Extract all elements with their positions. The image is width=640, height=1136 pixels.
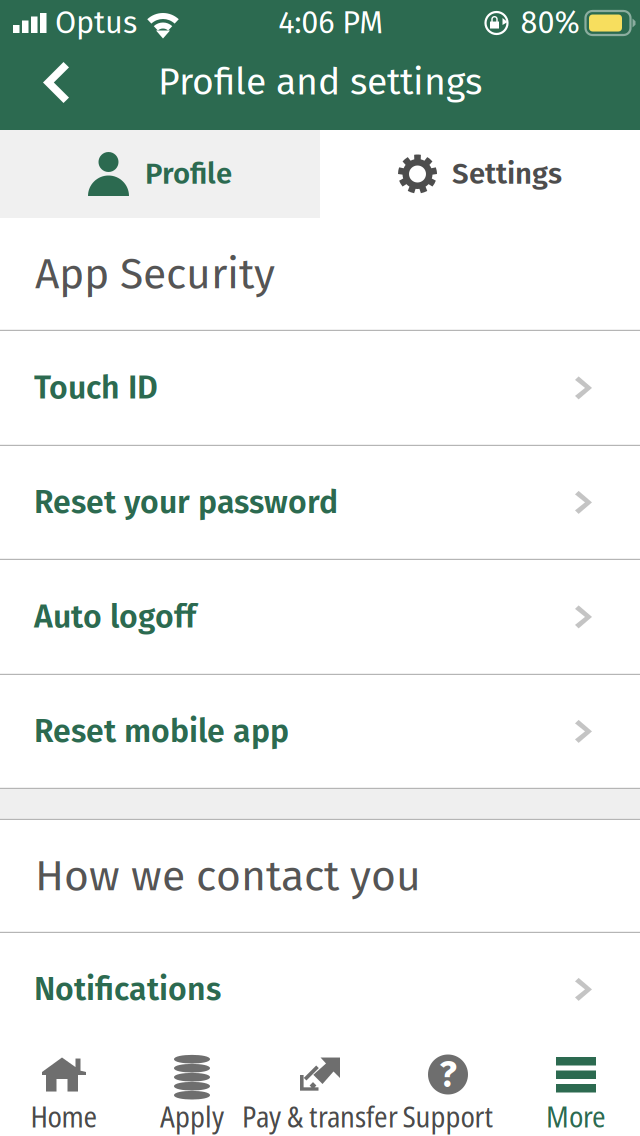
staticText: Reset your password <box>34 483 338 522</box>
staticText: Profile <box>145 156 232 192</box>
staticText: Auto logoff <box>34 598 196 636</box>
button[interactable]: Settings <box>320 130 640 218</box>
staticText: Optus <box>55 5 137 41</box>
button[interactable]: Touch ID <box>0 331 640 446</box>
staticText: Home <box>30 1096 97 1136</box>
button[interactable]: Notifications <box>0 933 640 1047</box>
staticText: Settings <box>452 156 562 192</box>
button[interactable]: Back <box>0 46 99 130</box>
button[interactable]: More <box>512 1037 640 1136</box>
button[interactable]: Auto logoff <box>0 560 640 675</box>
button[interactable]: Pay & transfer <box>256 1037 384 1136</box>
button[interactable]: Reset mobile app <box>0 675 640 789</box>
button[interactable]: Apply <box>128 1037 256 1136</box>
staticText: How we contact you <box>35 850 421 901</box>
staticText: Reset mobile app <box>34 712 289 751</box>
staticText: More <box>546 1096 606 1136</box>
button[interactable]: ? <box>384 1037 512 1136</box>
staticText: Pay & transfer <box>242 1096 398 1136</box>
staticText: ? <box>439 1053 456 1096</box>
staticText: Apply <box>160 1096 224 1136</box>
staticText: App Security <box>35 248 275 299</box>
staticText: Profile and settings <box>158 60 482 104</box>
button[interactable]: Home <box>0 1037 128 1136</box>
staticText: Support <box>402 1096 493 1136</box>
button[interactable]: Reset your password <box>0 446 640 560</box>
staticText: 80% <box>520 5 579 41</box>
staticText: Notifications <box>34 970 221 1009</box>
staticText: Touch ID <box>34 369 158 407</box>
staticText: 4:06 PM <box>278 5 383 41</box>
button[interactable]: Profile <box>0 130 320 218</box>
